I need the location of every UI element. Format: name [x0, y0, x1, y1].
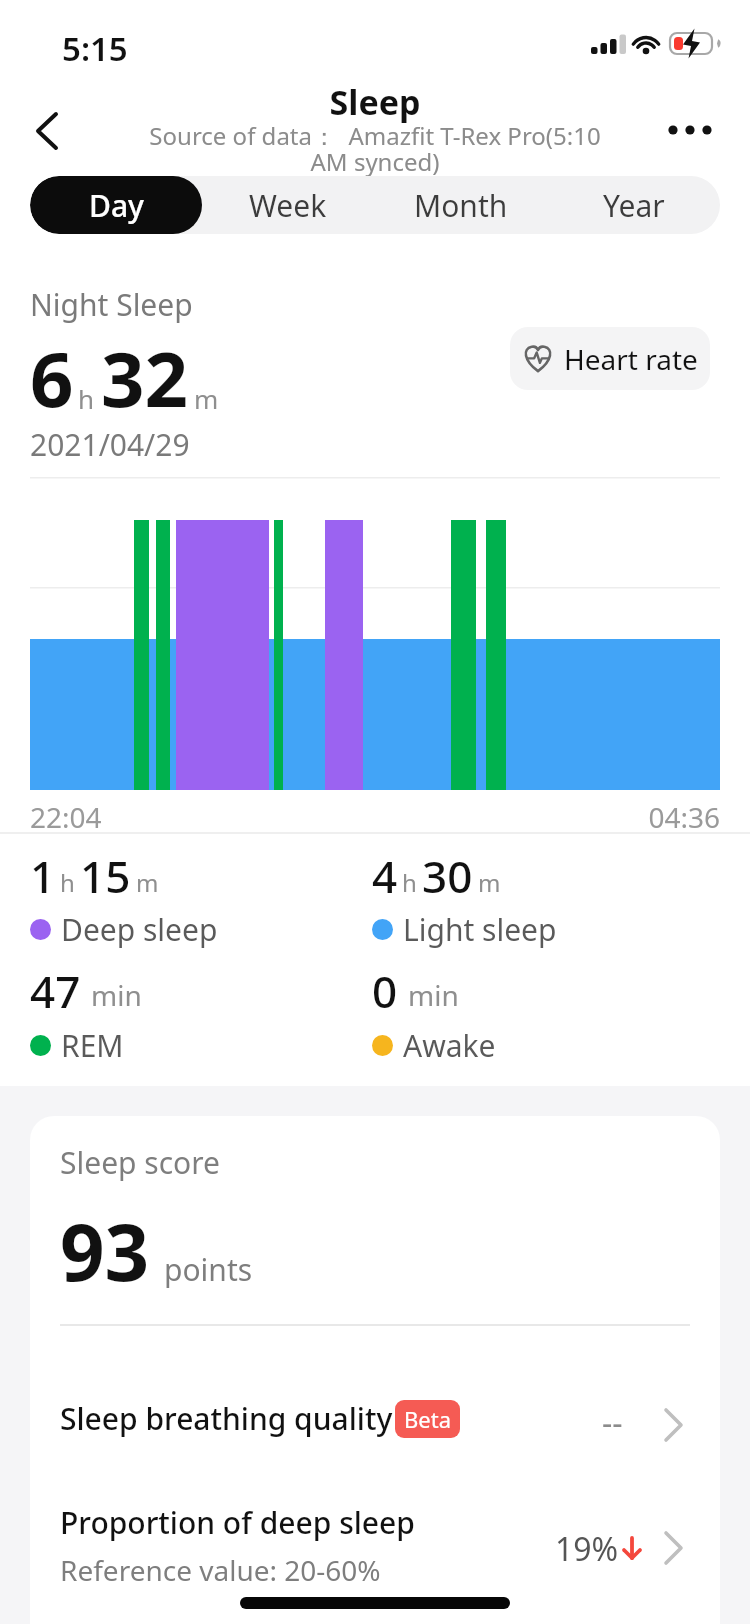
staticText: Proportion of deep sleep — [60, 1502, 415, 1543]
staticText: Sleep breathing quality — [60, 1398, 393, 1439]
staticText: 04:36 — [0, 798, 720, 836]
staticText: Week — [249, 185, 327, 226]
staticText: Heart rate — [564, 340, 698, 378]
staticText: Deep sleep — [61, 909, 218, 950]
button[interactable]: Proportion of deep sleep — [30, 1502, 720, 1624]
staticText: REM — [61, 1025, 124, 1066]
staticText: m — [478, 866, 501, 899]
staticText: Awake — [403, 1025, 496, 1066]
button[interactable] — [655, 105, 730, 155]
button[interactable]: Year — [547, 176, 720, 234]
button[interactable]: Heart rate — [510, 327, 710, 390]
staticText: h — [78, 381, 95, 416]
staticText: Beta — [404, 1404, 451, 1434]
staticText: Source of data： Amazfit T-Rex Pro(5:10 A… — [0, 119, 750, 178]
button[interactable]: Day — [30, 176, 202, 234]
staticText: 47 — [30, 961, 81, 1021]
staticText: m — [194, 381, 219, 416]
staticText: h — [60, 866, 75, 899]
staticText: min — [91, 976, 142, 1014]
staticText: Light sleep — [403, 909, 557, 950]
staticText: Night Sleep — [30, 284, 193, 325]
button[interactable] — [18, 100, 78, 160]
staticText: 2021/04/29 — [30, 424, 190, 465]
staticText: m — [136, 866, 159, 899]
staticText: Day — [89, 185, 144, 226]
staticText: Month — [414, 185, 508, 226]
staticText: 0 — [372, 961, 398, 1021]
staticText: Sleep — [0, 79, 750, 125]
staticText: 1 — [30, 846, 56, 906]
staticText: 19% — [555, 1527, 619, 1571]
button[interactable]: Sleep breathing quality — [30, 1386, 720, 1476]
staticText: -- — [602, 1401, 623, 1445]
staticText: 5:15 — [62, 26, 128, 71]
staticText: points — [164, 1249, 253, 1290]
staticText: h — [402, 866, 417, 899]
staticText: 30 — [422, 846, 473, 906]
staticText: Reference value: 20-60% — [60, 1551, 381, 1589]
button[interactable]: Month — [374, 176, 547, 234]
staticText: 32 — [101, 326, 188, 430]
staticText: 4 — [372, 846, 398, 906]
staticText: 6 — [30, 326, 74, 430]
staticText: 22:04 — [30, 798, 102, 836]
staticText: 93 — [60, 1198, 150, 1304]
staticText: min — [408, 976, 459, 1014]
button[interactable]: Week — [202, 176, 374, 234]
staticText: 15 — [80, 846, 131, 906]
staticText: Sleep score — [60, 1142, 220, 1183]
staticText: Year — [603, 185, 665, 226]
